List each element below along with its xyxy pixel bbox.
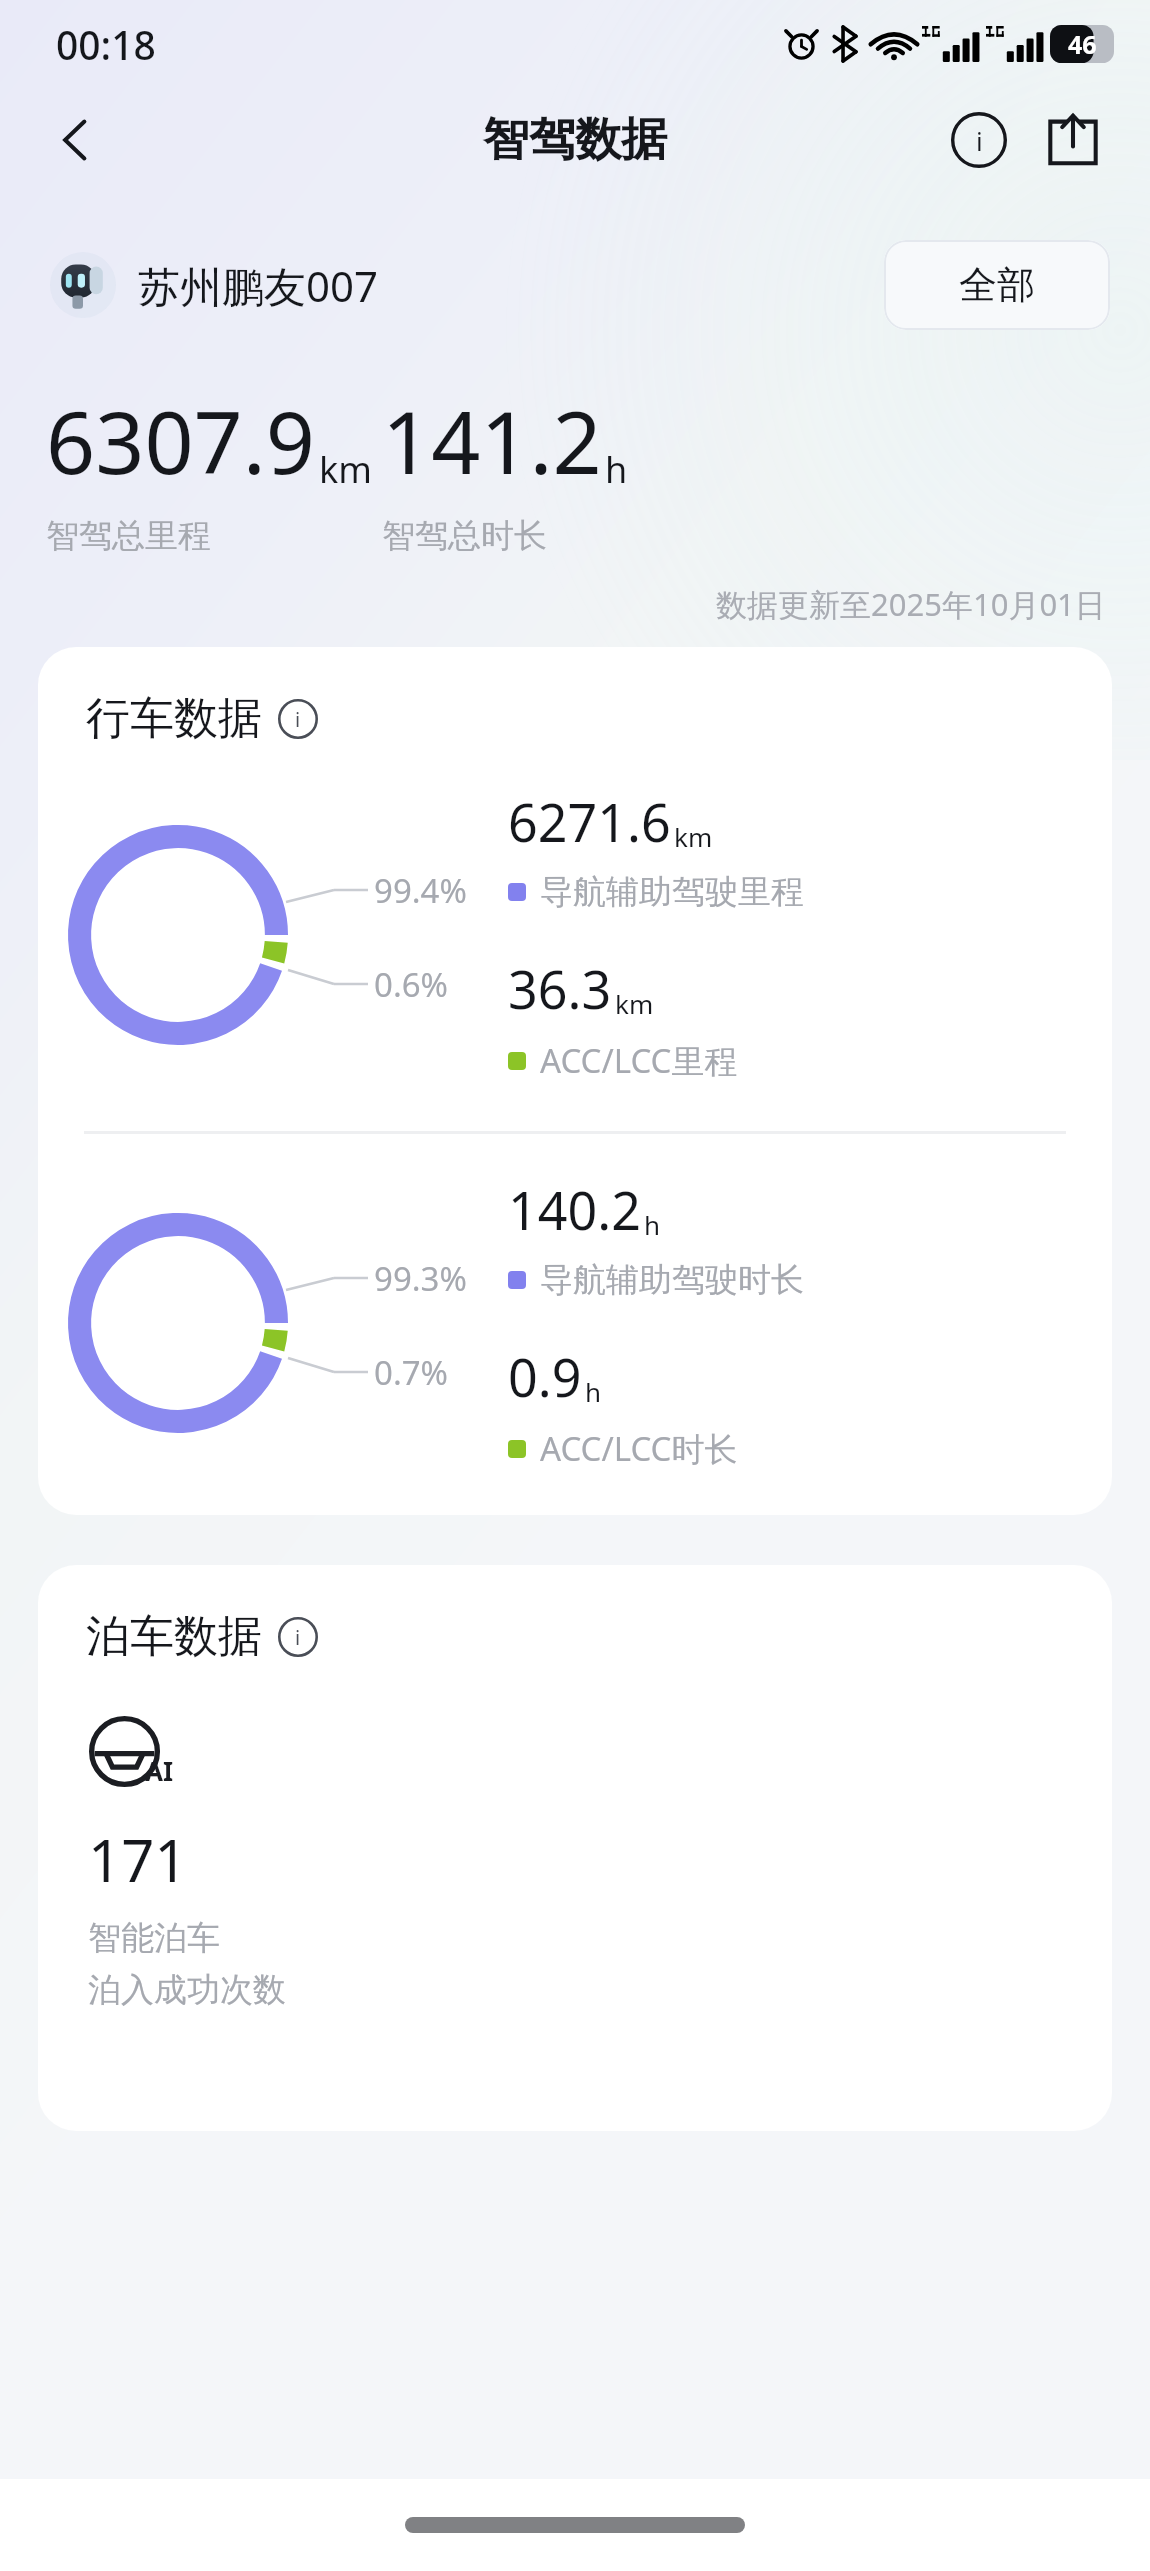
staticText: 36.3	[508, 953, 612, 1024]
staticText: 数据更新至2025年10月01日	[716, 583, 1106, 625]
staticText: ACC/LCC时长	[540, 1426, 738, 1471]
staticText: 0.9	[508, 1341, 582, 1412]
staticText: 智驾数据	[483, 111, 667, 169]
button[interactable]: 全部	[884, 240, 1110, 330]
staticText: km	[674, 819, 713, 854]
staticText: 苏州鹏友007	[138, 257, 379, 314]
staticText: km	[319, 445, 346, 494]
staticText: 智驾总里程	[46, 515, 211, 557]
staticText: 140.2	[508, 1174, 641, 1245]
staticText: AI	[145, 1753, 174, 1788]
button[interactable]: Info	[940, 101, 1018, 179]
staticText: km	[615, 986, 654, 1021]
staticText: 141.2	[382, 382, 602, 499]
staticText: 46	[1068, 27, 1097, 61]
staticText: h	[644, 1207, 661, 1242]
button[interactable]: 行车数据	[86, 691, 318, 746]
staticText: 泊车数据	[86, 1609, 262, 1664]
staticText: 泊入成功次数	[88, 1969, 286, 2011]
staticText: 6307.9	[46, 382, 316, 499]
staticText: 99.3%	[374, 1256, 467, 1301]
staticText: 导航辅助驾驶里程	[540, 871, 804, 913]
staticText: 6271.6	[508, 786, 671, 857]
staticText: 全部	[959, 261, 1035, 309]
staticText: 171	[88, 1820, 188, 1899]
staticText: i	[295, 706, 301, 733]
staticText: h	[585, 1374, 602, 1409]
staticText: ACC/LCC里程	[540, 1038, 738, 1083]
staticText: i	[976, 123, 983, 158]
button[interactable]: Back	[40, 104, 112, 176]
button[interactable]: Share	[1034, 101, 1112, 179]
staticText: 99.4%	[374, 868, 467, 913]
staticText: 00:18	[56, 18, 156, 71]
staticText: h	[605, 445, 628, 494]
staticText: 智驾总时长	[382, 515, 547, 557]
staticText: 行车数据	[86, 691, 262, 746]
staticText: 导航辅助驾驶时长	[540, 1259, 804, 1301]
staticText: 智能泊车	[88, 1917, 220, 1959]
staticText: i	[295, 1624, 301, 1651]
staticText: 0.6%	[374, 962, 449, 1007]
staticText: 0.7%	[374, 1350, 449, 1395]
button[interactable]: 泊车数据	[86, 1609, 318, 1664]
